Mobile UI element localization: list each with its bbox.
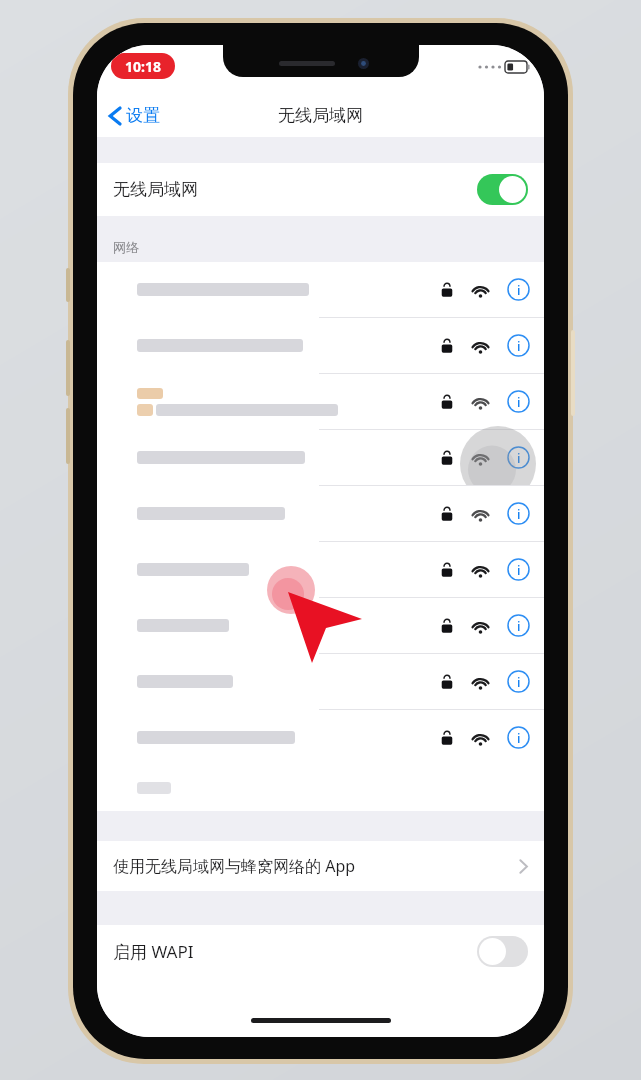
button[interactable]: Secured — [97, 710, 544, 765]
other: Secured — [441, 618, 453, 634]
other: Wi-Fi signal — [470, 730, 491, 746]
button[interactable]: Network info — [507, 670, 530, 693]
other: Secured — [441, 450, 453, 466]
other: Wi-Fi signal — [470, 394, 491, 410]
button[interactable]: Secured — [97, 486, 544, 541]
staticText: 无线局域网 — [278, 105, 363, 126]
other: Wi-Fi signal — [470, 674, 491, 690]
button[interactable]: 无线局域网 — [97, 163, 544, 216]
button[interactable]: Secured — [97, 262, 544, 317]
button[interactable]: Network info — [507, 446, 530, 469]
button[interactable]: Network info — [507, 390, 530, 413]
staticText: 10:18 — [125, 57, 161, 76]
other: Secured — [441, 506, 453, 522]
button[interactable]: 启用 WAPI — [97, 925, 544, 977]
staticText: i — [517, 561, 521, 579]
other: Wi-Fi signal — [470, 562, 491, 578]
other: Wi-Fi signal — [470, 450, 491, 466]
button[interactable]: Network info — [507, 558, 530, 581]
other: Wi-Fi signal — [470, 506, 491, 522]
staticText: i — [517, 281, 521, 299]
button[interactable]: Network info — [507, 278, 530, 301]
staticText: 启用 WAPI — [113, 940, 194, 963]
staticText: 无线局域网 — [113, 179, 198, 200]
other: Secured — [441, 338, 453, 354]
button[interactable]: Network info — [507, 334, 530, 357]
button[interactable]: On — [477, 174, 528, 205]
button[interactable]: 使用无线局域网与蜂窝网络的 App — [97, 841, 544, 891]
staticText: i — [517, 617, 521, 635]
button[interactable]: Network info — [507, 502, 530, 525]
staticText: i — [517, 393, 521, 411]
staticText: i — [517, 449, 521, 467]
button[interactable]: Secured — [97, 318, 544, 373]
staticText: i — [517, 505, 521, 523]
button[interactable]: Secured — [97, 654, 544, 709]
button[interactable]: Network info — [507, 614, 530, 637]
button[interactable]: Secured — [97, 542, 544, 597]
button[interactable]: 设置 — [97, 99, 172, 132]
other: Wi-Fi signal — [470, 338, 491, 354]
other: Wi-Fi signal — [470, 282, 491, 298]
button[interactable]: Secured — [97, 430, 544, 485]
button[interactable]: Off — [477, 936, 528, 967]
button[interactable]: Secured — [97, 374, 544, 429]
other: Secured — [441, 562, 453, 578]
staticText: i — [517, 337, 521, 355]
other: Secured — [441, 674, 453, 690]
staticText: i — [517, 673, 521, 691]
button[interactable]: Secured — [97, 598, 544, 653]
staticText: 使用无线局域网与蜂窝网络的 App — [113, 855, 356, 877]
other: Secured — [441, 282, 453, 298]
button[interactable]: Network info — [507, 726, 530, 749]
other: Wi-Fi signal — [470, 618, 491, 634]
other: Secured — [441, 730, 453, 746]
staticText: 设置 — [126, 105, 160, 126]
staticText: i — [517, 729, 521, 747]
other: Secured — [441, 394, 453, 410]
staticText: 网络 — [113, 239, 139, 255]
